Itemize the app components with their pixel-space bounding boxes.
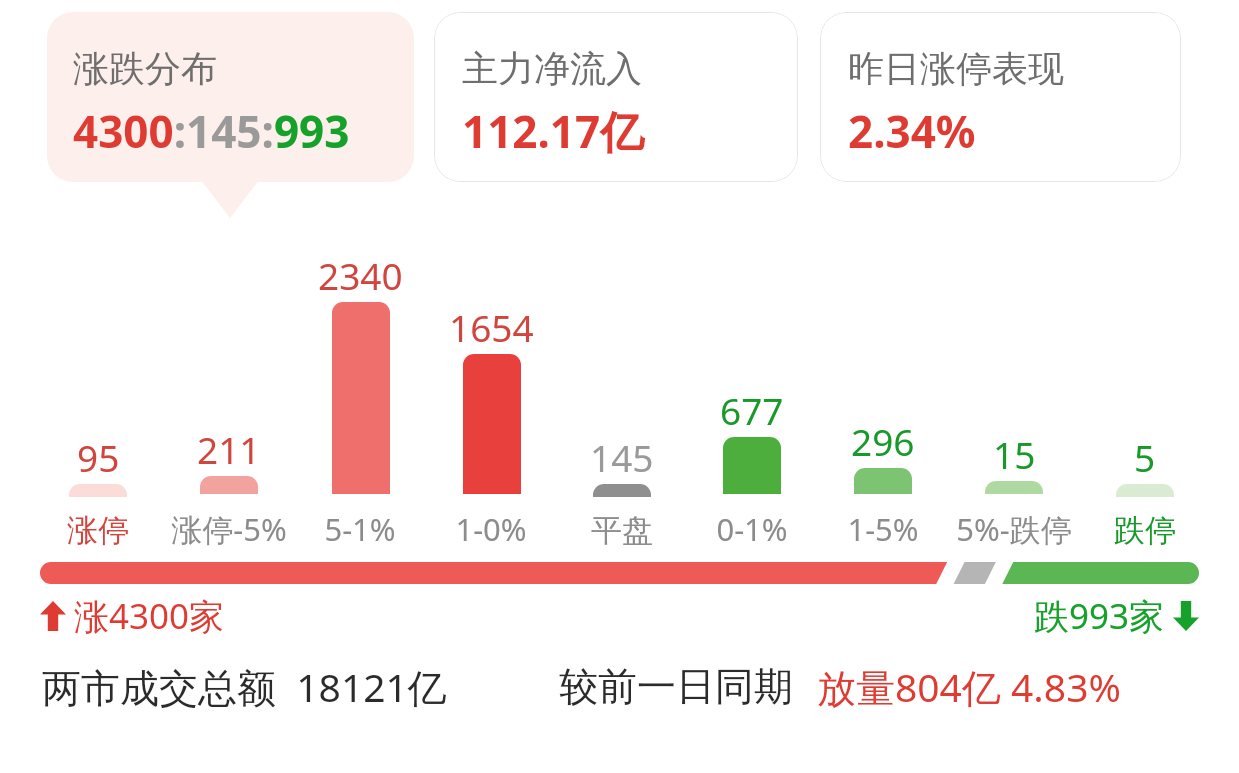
staticText: 主力净流入 — [462, 46, 642, 91]
staticText: 涨停 — [67, 511, 129, 550]
button[interactable]: 跌993家 — [1034, 592, 1199, 640]
staticText: 2.34% — [848, 101, 976, 161]
staticText: 涨跌分布 — [73, 46, 217, 91]
staticText: 0-1% — [716, 508, 788, 550]
button[interactable]: 15 — [952, 240, 1076, 550]
button[interactable]: 296 — [821, 240, 945, 550]
staticText: 两市成交总额 18121亿 — [42, 660, 447, 713]
staticText: 5-1% — [324, 508, 396, 550]
staticText: 4300:145:993 — [73, 101, 350, 161]
staticText: 5%-跌停 — [956, 508, 1072, 550]
button[interactable]: 涨4300家 — [40, 592, 225, 640]
button[interactable]: 95 — [36, 243, 160, 550]
button[interactable]: 2340 — [298, 240, 422, 550]
staticText: 677 — [720, 385, 784, 435]
staticText: 1654 — [449, 302, 534, 352]
staticText: 1-5% — [847, 508, 919, 550]
other: Up — [40, 601, 66, 631]
staticText: 涨4300家 — [74, 592, 225, 640]
button[interactable]: 677 — [690, 240, 814, 550]
staticText: 2340 — [318, 250, 403, 300]
button[interactable]: 主力净流入 — [434, 12, 798, 182]
button[interactable]: 涨跌分布 — [47, 12, 414, 182]
staticText: 1-0% — [455, 508, 527, 550]
staticText: 211 — [197, 424, 261, 474]
staticText: 涨停-5% — [171, 508, 287, 550]
staticText: 跌993家 — [1034, 592, 1165, 640]
staticText: 5 — [1134, 432, 1156, 482]
button[interactable]: 昨日涨停表现 — [820, 12, 1181, 182]
button[interactable]: 145 — [560, 243, 684, 550]
button[interactable]: 211 — [167, 240, 291, 550]
staticText: 112.17亿 — [462, 101, 645, 161]
button[interactable]: 5 — [1083, 243, 1207, 550]
staticText: 放量804亿 4.83% — [817, 660, 1121, 713]
other: Down — [1173, 601, 1199, 631]
staticText: 昨日涨停表现 — [848, 46, 1064, 91]
staticText: 296 — [851, 416, 915, 466]
button[interactable]: 1654 — [429, 240, 553, 550]
staticText: 145 — [590, 432, 654, 482]
staticText: 较前一日同期 — [559, 662, 793, 711]
staticText: 95 — [77, 432, 120, 482]
staticText: 15 — [993, 429, 1036, 479]
staticText: 跌停 — [1114, 511, 1176, 550]
staticText: 平盘 — [591, 511, 653, 550]
